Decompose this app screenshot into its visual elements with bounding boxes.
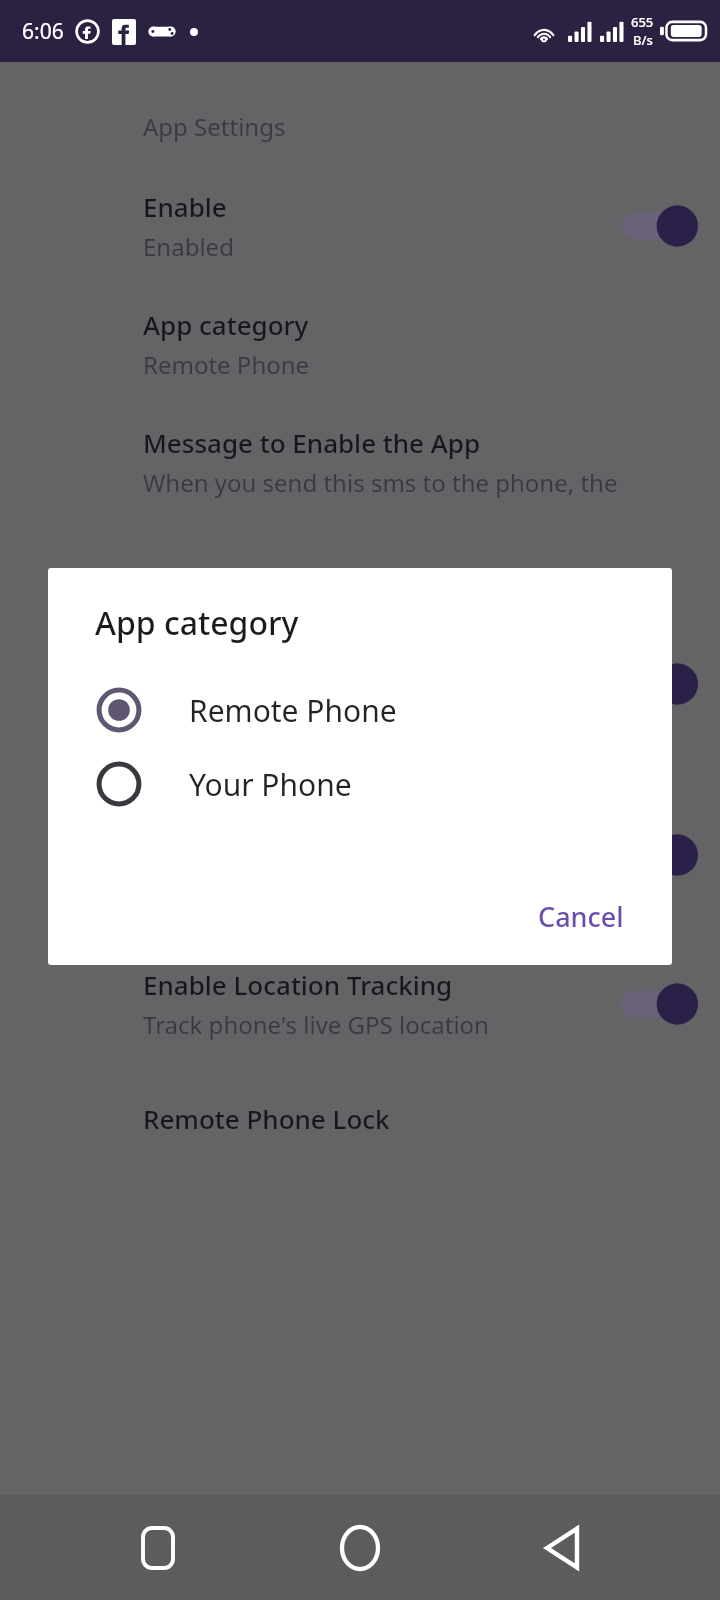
- button[interactable]: Toggle: [622, 662, 698, 706]
- staticText: Cancel: [538, 898, 624, 935]
- staticText: Your Phone: [189, 764, 352, 805]
- staticText: B/s: [633, 31, 653, 49]
- button[interactable]: Remote Phone: [48, 686, 672, 734]
- button[interactable]: Enable Location Tracking: [0, 967, 720, 1041]
- staticText: Message to Enable the App: [143, 425, 481, 460]
- button[interactable]: Back: [518, 1504, 606, 1592]
- staticText: 6:06: [22, 17, 64, 46]
- staticText: When you send this sms to the phone, the: [143, 466, 618, 499]
- button[interactable]: Remote Phone Lock: [0, 1101, 720, 1136]
- button[interactable]: Cancel: [522, 890, 640, 943]
- staticText: Remote Phone Lock: [143, 1101, 390, 1136]
- button[interactable]: Your Phone: [48, 760, 672, 808]
- staticText: Track WhatsApp Messages: [143, 627, 473, 662]
- button[interactable]: Message to Enable the App: [0, 425, 720, 499]
- staticText: Track phone's live GPS location: [143, 1008, 489, 1041]
- button[interactable]: Recent apps: [114, 1504, 202, 1592]
- button[interactable]: App category: [0, 307, 720, 381]
- staticText: App category: [143, 307, 309, 342]
- staticText: Enable Location Tracking: [143, 967, 453, 1002]
- button[interactable]: Toggle: [622, 833, 698, 877]
- button[interactable]: Toggle: [622, 982, 698, 1026]
- staticText: 655: [631, 13, 654, 31]
- staticText: Enable: [143, 189, 227, 224]
- staticText: Enable to monitor WhatsApp message activ…: [143, 668, 468, 740]
- staticText: Remote Phone: [189, 690, 397, 731]
- button[interactable]: Home: [316, 1504, 404, 1592]
- staticText: App category: [95, 601, 299, 645]
- button[interactable]: Enable: [0, 189, 720, 263]
- staticText: Enabled: [143, 230, 234, 263]
- button[interactable]: Track WhatsApp Messages: [0, 627, 720, 740]
- staticText: App Settings: [143, 110, 286, 143]
- staticText: Remote Phone: [143, 348, 310, 381]
- button[interactable]: Track Instagram Activity: [0, 798, 720, 911]
- button[interactable]: Toggle: [622, 204, 698, 248]
